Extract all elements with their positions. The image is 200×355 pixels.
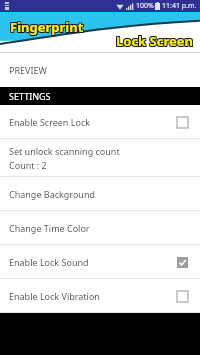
button[interactable]: Enable Screen Lock (0, 105, 200, 138)
staticText: Fingerprint (9, 19, 83, 37)
staticText: Lock Screen (115, 32, 192, 50)
staticText: Count : 2 (9, 159, 47, 171)
button[interactable]: Unchecked (173, 113, 191, 131)
staticText: 100% (136, 1, 154, 11)
staticText: Lock Screen (117, 31, 194, 49)
button[interactable]: Enable Lock Vibration (0, 279, 200, 312)
staticText: Fingerprint (10, 19, 84, 37)
staticText: Fingerprint (11, 18, 85, 36)
staticText: SETTINGS (9, 90, 51, 102)
button[interactable]: Enable Lock Sound (0, 245, 200, 278)
staticText: PREVIEW (9, 64, 47, 76)
staticText: Fingerprint (11, 17, 85, 35)
button[interactable]: Set unlock scanning count (0, 139, 200, 176)
staticText: Fingerprint (10, 17, 84, 35)
staticText: Enable Lock Vibration (9, 290, 100, 302)
button[interactable]: PREVIEW (0, 53, 200, 87)
button[interactable]: Unchecked (173, 287, 191, 305)
staticText: 11:41 p.m. (162, 1, 197, 11)
button[interactable]: Change Time Color (0, 211, 200, 244)
staticText: Change Background (9, 188, 96, 200)
staticText: Fingerprint (11, 19, 85, 37)
staticText: Lock Screen (117, 32, 194, 50)
staticText: Fingerprint (9, 17, 83, 35)
staticText: Fingerprint (9, 18, 83, 36)
staticText: Lock Screen (116, 32, 193, 50)
staticText: Lock Screen (115, 33, 192, 51)
staticText: Enable Screen Lock (9, 116, 91, 128)
staticText: Enable Lock Sound (9, 256, 89, 268)
button[interactable]: Checked (173, 253, 191, 271)
staticText: Fingerprint (10, 18, 84, 36)
staticText: Set unlock scanning count (9, 145, 120, 157)
staticText: Lock Screen (116, 31, 193, 49)
staticText: Lock Screen (116, 33, 193, 51)
button[interactable]: Change Background (0, 177, 200, 210)
staticText: Lock Screen (117, 33, 194, 51)
staticText: Lock Screen (115, 31, 192, 49)
staticText: Change Time Color (9, 222, 90, 234)
